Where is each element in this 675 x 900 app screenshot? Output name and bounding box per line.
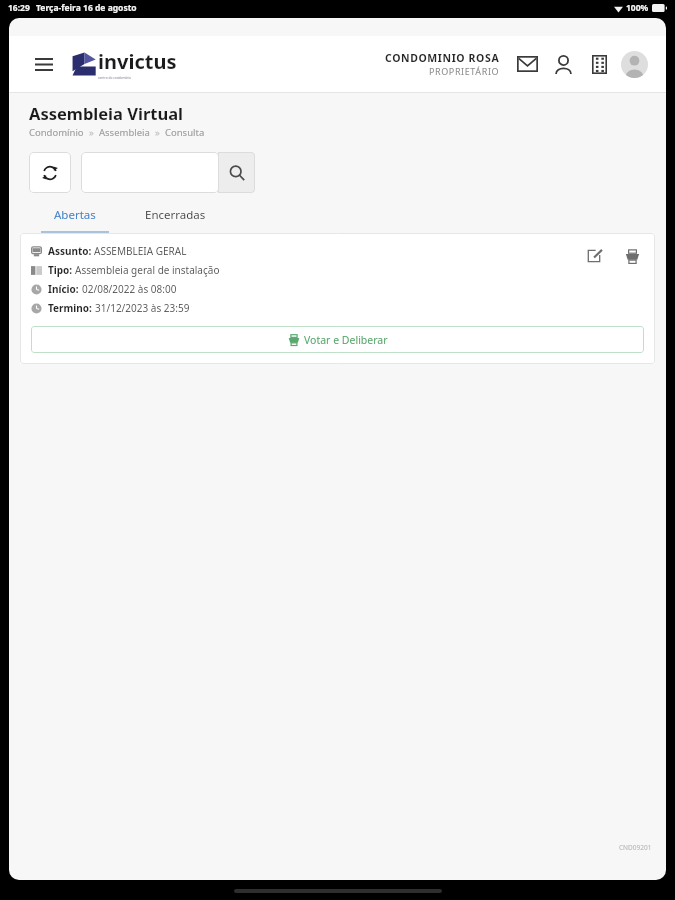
button[interactable]: Abertas	[29, 207, 121, 233]
staticText: Assembleia geral de instalação	[75, 263, 220, 277]
button[interactable]	[81, 152, 219, 193]
staticText: Abertas	[54, 207, 96, 223]
button[interactable]: Pesquisar	[218, 152, 255, 193]
staticText: 31/12/2023 às 23:59	[95, 301, 190, 315]
staticText: CND09201	[619, 843, 652, 852]
staticText: Condomínio	[29, 126, 84, 139]
button[interactable]: Encerradas	[129, 207, 221, 233]
staticText: Consulta	[165, 126, 205, 139]
staticText: Assembleia Virtual	[29, 102, 183, 124]
staticText: ASSEMBLEIA GERAL	[94, 244, 187, 258]
button[interactable]: Atualizar	[29, 152, 71, 193]
staticText: Assunto:	[48, 244, 94, 258]
staticText: 02/08/2022 às 08:00	[82, 282, 177, 296]
staticText: Terça-feira 16 de agosto	[36, 2, 137, 14]
staticText: PROPRIETÁRIO	[429, 65, 500, 77]
button[interactable]: Condomínio	[585, 50, 613, 78]
button[interactable]: Conta	[621, 51, 648, 78]
staticText: 16:29	[8, 2, 30, 14]
button[interactable]: Mensagens	[513, 50, 541, 78]
button[interactable]: CONDOMINIO ROSA	[385, 51, 500, 77]
staticText: Assembleia	[99, 126, 150, 139]
staticText: centro do condomínio	[98, 76, 132, 80]
button[interactable]: Perfil	[549, 50, 577, 78]
button[interactable]: Editar	[582, 244, 606, 268]
staticText: Tipo:	[48, 263, 75, 277]
button[interactable]: invictus	[71, 48, 177, 80]
staticText: CONDOMINIO ROSA	[385, 51, 500, 65]
staticText: 100%	[626, 2, 649, 14]
staticText: Termino:	[48, 301, 95, 315]
staticText: »	[84, 126, 99, 139]
staticText: »	[150, 126, 165, 139]
staticText: invictus	[98, 48, 177, 75]
staticText: Encerradas	[145, 207, 206, 223]
button[interactable]: Menu	[31, 51, 57, 77]
staticText: Votar e Deliberar	[304, 333, 388, 347]
button[interactable]: Votar e Deliberar	[31, 326, 644, 353]
staticText: Início:	[48, 282, 82, 296]
button[interactable]: Imprimir	[620, 244, 644, 268]
